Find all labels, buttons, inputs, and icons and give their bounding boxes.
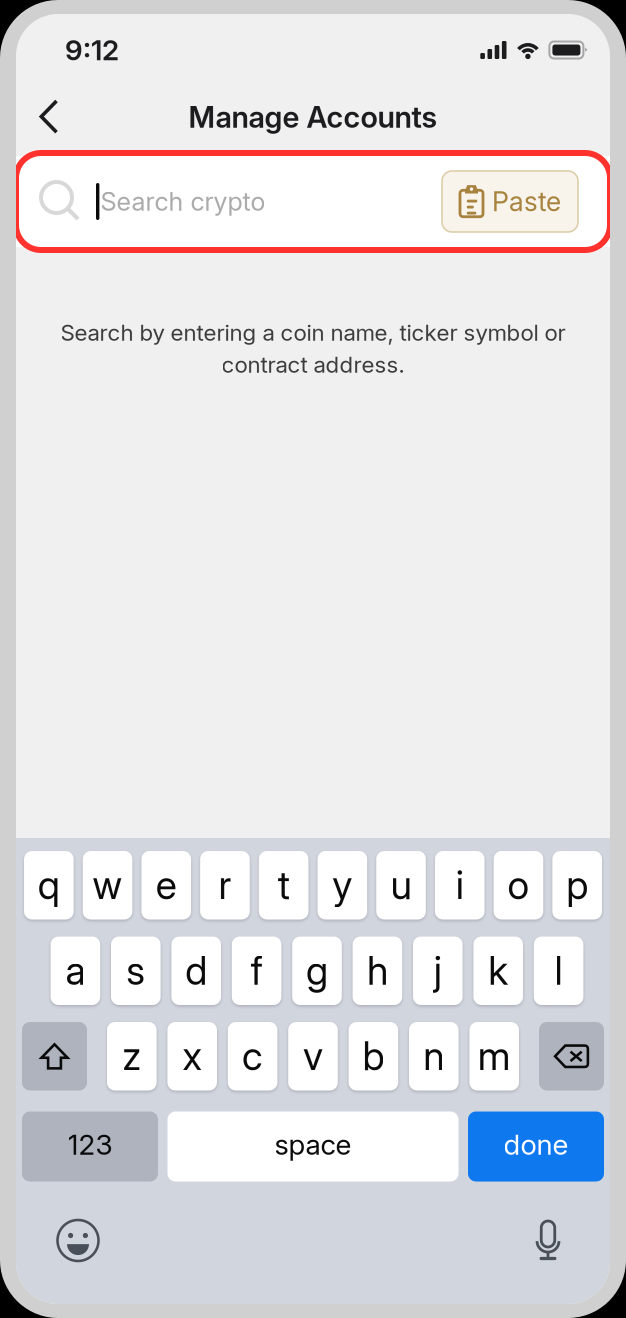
button[interactable]: c (228, 1022, 277, 1090)
staticText: i (456, 862, 464, 909)
staticText: w (92, 862, 122, 909)
button[interactable]: o (494, 851, 543, 919)
button[interactable]: Delete (539, 1022, 604, 1090)
button[interactable]: f (232, 936, 281, 1005)
button[interactable]: x (167, 1022, 217, 1090)
button[interactable]: q (24, 851, 74, 919)
button[interactable]: h (353, 936, 402, 1005)
staticText: u (390, 862, 411, 909)
button[interactable]: e (141, 851, 191, 919)
staticText: f (251, 947, 263, 994)
staticText: l (555, 947, 563, 994)
button[interactable]: i (435, 851, 484, 919)
staticText: v (303, 1033, 323, 1080)
staticText: t (278, 862, 290, 909)
button[interactable]: p (552, 851, 602, 919)
staticText: d (185, 947, 207, 994)
button[interactable]: l (534, 936, 583, 1005)
staticText: Search crypto (100, 186, 265, 217)
staticText: k (488, 947, 508, 994)
button[interactable]: z (107, 1022, 157, 1090)
staticText: e (156, 862, 177, 909)
staticText: o (507, 862, 529, 909)
button[interactable]: r (200, 851, 250, 919)
staticText: Manage Accounts (188, 99, 437, 135)
staticText: z (122, 1033, 141, 1080)
button[interactable]: k (473, 936, 523, 1005)
button[interactable]: w (83, 851, 132, 919)
button[interactable]: u (376, 851, 426, 919)
button[interactable]: m (469, 1022, 519, 1090)
staticText: 9:12 (65, 33, 119, 67)
button[interactable]: y (317, 851, 367, 919)
button[interactable]: Back (20, 86, 78, 148)
button[interactable]: done (468, 1111, 604, 1181)
staticText: c (242, 1033, 263, 1080)
button[interactable]: a (51, 936, 100, 1005)
staticText: a (65, 947, 85, 994)
staticText: b (362, 1033, 384, 1080)
staticText: 123 (67, 1128, 112, 1161)
staticText: y (332, 862, 352, 909)
button[interactable]: Paste (442, 171, 578, 232)
button[interactable]: Shift (22, 1022, 87, 1090)
button[interactable]: space (167, 1111, 458, 1181)
staticText: p (566, 862, 588, 909)
staticText: n (423, 1033, 444, 1080)
staticText: done (503, 1128, 568, 1161)
staticText: s (126, 947, 145, 994)
button[interactable]: j (413, 936, 463, 1005)
staticText: j (434, 947, 442, 994)
staticText: h (367, 947, 388, 994)
button[interactable]: d (171, 936, 221, 1005)
button[interactable]: Dictation (535, 1220, 561, 1260)
staticText: m (478, 1033, 511, 1080)
staticText: contract address. (221, 351, 404, 378)
button[interactable]: n (409, 1022, 459, 1090)
button[interactable]: v (288, 1022, 338, 1090)
staticText: x (182, 1033, 202, 1080)
staticText: space (274, 1128, 351, 1161)
button[interactable]: t (259, 851, 308, 919)
staticText: Search by entering a coin name, ticker s… (60, 319, 565, 346)
button[interactable]: s (111, 936, 161, 1005)
button[interactable]: 123 (22, 1111, 158, 1181)
button[interactable]: b (349, 1022, 398, 1090)
staticText: g (306, 947, 328, 994)
staticText: q (38, 862, 60, 909)
staticText: r (218, 862, 231, 909)
staticText: Paste (492, 185, 561, 218)
button[interactable]: g (292, 936, 342, 1005)
button[interactable]: Emoji (56, 1218, 100, 1262)
